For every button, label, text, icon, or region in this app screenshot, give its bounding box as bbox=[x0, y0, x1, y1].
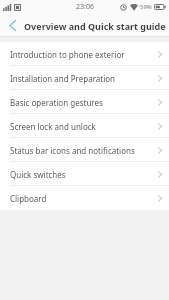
staticText: Overview and Quick start guide bbox=[24, 20, 166, 32]
staticText: Introduction to phone exterior bbox=[10, 49, 125, 60]
button[interactable]: Back bbox=[0, 14, 24, 37]
staticText: 23:06 bbox=[76, 2, 94, 12]
staticText: Quick switches bbox=[10, 169, 66, 180]
staticText: 59% bbox=[140, 3, 152, 11]
button[interactable]: Basic operation gestures bbox=[0, 90, 169, 114]
button[interactable]: Quick switches bbox=[0, 162, 169, 186]
button[interactable]: Clipboard bbox=[0, 186, 169, 210]
button[interactable]: Status bar icons and notifications bbox=[0, 138, 169, 162]
staticText: Basic operation gestures bbox=[10, 97, 103, 108]
button[interactable]: Installation and Preparation bbox=[0, 66, 169, 90]
staticText: Status bar icons and notifications bbox=[10, 145, 135, 156]
staticText: Installation and Preparation bbox=[10, 73, 115, 84]
button[interactable]: Introduction to phone exterior bbox=[0, 42, 169, 66]
staticText: Screen lock and unlock bbox=[10, 121, 96, 132]
button[interactable]: Screen lock and unlock bbox=[0, 114, 169, 138]
staticText: Clipboard bbox=[10, 193, 47, 204]
